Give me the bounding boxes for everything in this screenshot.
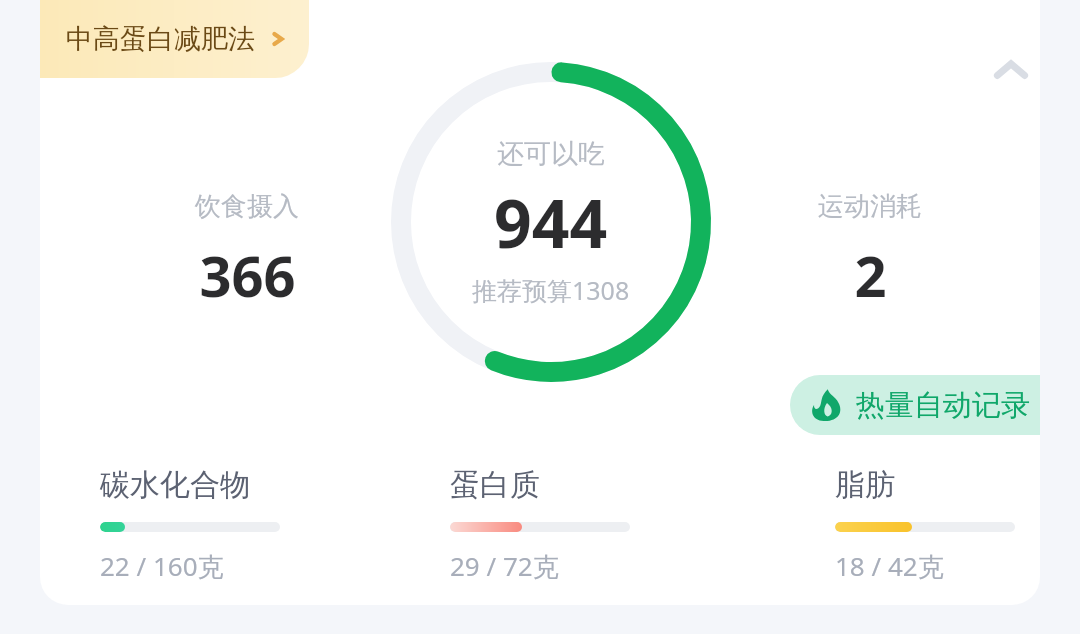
staticText: 碳水化合物 — [100, 466, 250, 504]
button[interactable]: 饮食摄入 — [152, 190, 342, 313]
staticText: 还可以吃 — [497, 137, 605, 171]
button[interactable]: 中高蛋白减肥法 — [40, 0, 309, 78]
staticText: 2 — [854, 237, 887, 313]
button[interactable]: 还可以吃 — [381, 52, 721, 392]
staticText: 366 — [199, 237, 296, 313]
button[interactable]: 热量自动记录 — [790, 375, 1040, 435]
staticText: 热量自动记录 — [856, 387, 1030, 424]
button[interactable]: 运动消耗 — [775, 190, 965, 313]
staticText: 推荐预算1308 — [472, 273, 630, 307]
staticText: 29 / 72克 — [450, 548, 559, 584]
staticText: 脂肪 — [835, 466, 895, 504]
button[interactable]: Collapse — [977, 36, 1040, 104]
staticText: 22 / 160克 — [100, 548, 224, 584]
button[interactable]: 蛋白质 — [450, 466, 750, 584]
staticText: 蛋白质 — [450, 466, 540, 504]
staticText: 18 / 42克 — [835, 548, 944, 584]
staticText: 中高蛋白减肥法 — [66, 22, 255, 56]
button[interactable]: 脂肪 — [835, 466, 1040, 584]
staticText: 运动消耗 — [818, 190, 922, 223]
staticText: 944 — [494, 177, 608, 267]
button[interactable]: 碳水化合物 — [100, 466, 400, 584]
staticText: 饮食摄入 — [195, 190, 299, 223]
